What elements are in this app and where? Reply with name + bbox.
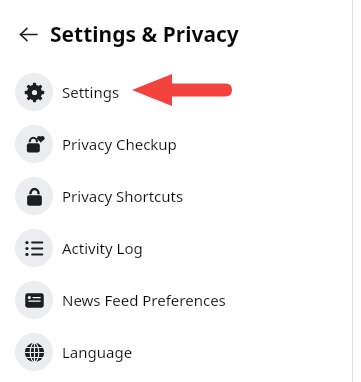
button[interactable]: Privacy Shortcuts <box>0 170 361 222</box>
staticText: Activity Log <box>62 238 143 258</box>
staticText: News Feed Preferences <box>62 290 226 310</box>
button[interactable]: Settings <box>0 66 361 118</box>
button[interactable]: Privacy Checkup <box>0 118 361 170</box>
button[interactable]: Back <box>11 17 45 51</box>
staticText: Language <box>62 342 133 362</box>
button[interactable]: News Feed Preferences <box>0 274 361 326</box>
button[interactable]: Activity Log <box>0 222 361 274</box>
staticText: Privacy Checkup <box>62 134 177 154</box>
staticText: Privacy Shortcuts <box>62 186 184 206</box>
staticText: Settings & Privacy <box>50 20 239 49</box>
staticText: Settings <box>62 82 120 102</box>
button[interactable]: Language <box>0 326 361 378</box>
